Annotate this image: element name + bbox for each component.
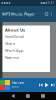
staticText: Share [5, 41, 15, 46]
button[interactable]: Rate me [5, 54, 47, 61]
staticText: Artist [11, 85, 18, 89]
staticText: About Us [5, 27, 25, 33]
staticText: Rate me [5, 55, 19, 60]
button[interactable]: Home [26, 94, 30, 98]
staticText: Work App [5, 48, 23, 53]
button[interactable]: Share [5, 40, 47, 47]
button[interactable]: Next track [51, 83, 54, 87]
staticText: Send Email [5, 34, 24, 39]
button[interactable]: Previous track [39, 83, 43, 87]
staticText: MP3 Music Player [2, 11, 35, 17]
button[interactable]: Back [11, 94, 15, 98]
staticText: Track name [11, 81, 24, 85]
button[interactable]: Search [44, 11, 49, 16]
button[interactable]: Recent apps [41, 94, 45, 98]
button[interactable]: More options [49, 11, 54, 16]
staticText: 9:41 [47, 1, 54, 5]
button[interactable]: Send Email [5, 33, 47, 40]
button[interactable]: Play [45, 83, 49, 87]
button[interactable]: Work App [5, 47, 47, 54]
